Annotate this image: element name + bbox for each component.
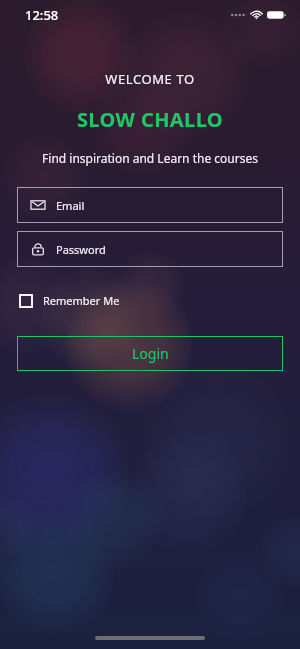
button[interactable]: Remember Me <box>17 289 122 312</box>
staticText: 12:58 <box>25 6 59 24</box>
staticText: Email <box>56 198 85 213</box>
staticText: Remember Me <box>43 293 120 308</box>
staticText: Login <box>132 344 169 363</box>
staticText: SLOW CHALLO <box>0 106 300 133</box>
button[interactable]: Email <box>17 187 283 223</box>
staticText: WELCOME TO <box>0 70 300 88</box>
staticText: Password <box>56 242 106 257</box>
button[interactable]: Login <box>17 336 283 371</box>
button[interactable]: Password <box>17 231 283 267</box>
staticText: Find inspiration and Learn the courses <box>0 150 300 166</box>
